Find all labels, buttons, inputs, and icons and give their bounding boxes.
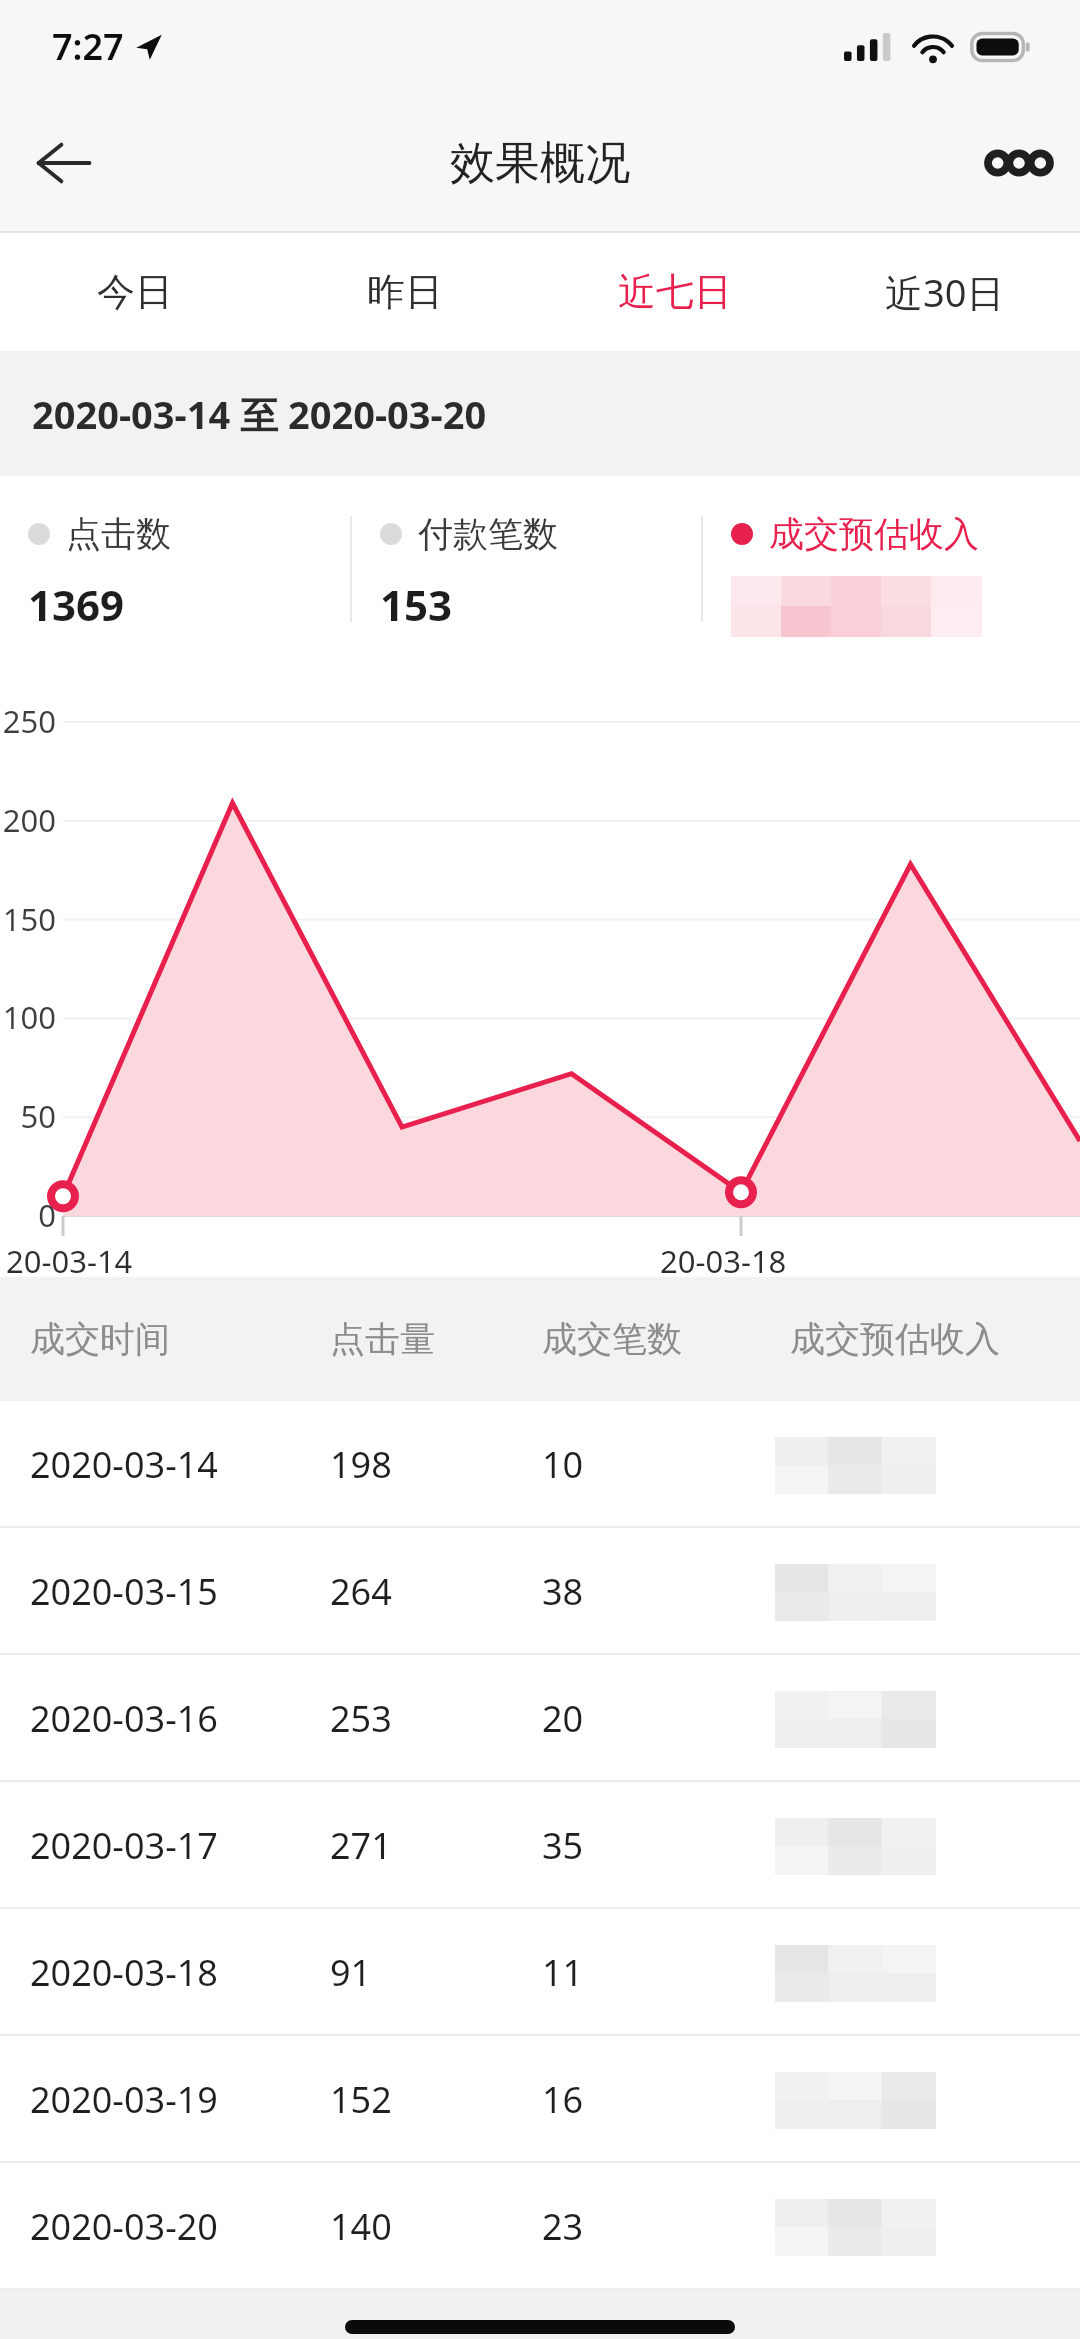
staticText: 近30日: [885, 266, 1005, 318]
staticText: 昨日: [367, 268, 443, 316]
staticText: 2020-03-20: [30, 2202, 218, 2251]
staticText: 2020-03-16: [30, 1694, 218, 1743]
staticText: 近七日: [618, 268, 732, 316]
staticText: 2020-03-18: [30, 1948, 218, 1997]
staticText: 20-03-14: [6, 1240, 133, 1282]
staticText: 140: [330, 2202, 392, 2251]
staticText: 20-03-18: [660, 1240, 787, 1282]
staticText: 2020-03-14: [30, 1440, 218, 1489]
staticText: 198: [330, 1440, 392, 1489]
staticText: 153: [380, 576, 453, 633]
button[interactable]: 近30日: [810, 233, 1080, 351]
staticText: 250: [0, 700, 56, 742]
staticText: 点击数: [66, 512, 171, 556]
staticText: 16: [542, 2075, 584, 2124]
staticText: 点击量: [330, 1317, 435, 1361]
staticText: 成交笔数: [542, 1317, 682, 1361]
staticText: 成交预估收入: [769, 512, 979, 556]
staticText: 1369: [28, 576, 125, 633]
button[interactable]: 点击数: [0, 476, 350, 662]
staticText: 271: [330, 1821, 392, 1870]
staticText: 152: [330, 2075, 392, 2124]
button[interactable]: 成交预估收入: [703, 476, 1080, 662]
staticText: 2020-03-19: [30, 2075, 218, 2124]
staticText: 50: [0, 1095, 56, 1137]
staticText: 2020-03-15: [30, 1567, 218, 1616]
button[interactable]: 2020-03-20: [0, 2163, 1080, 2290]
staticText: 效果概况: [450, 135, 630, 192]
button[interactable]: 近七日: [540, 233, 810, 351]
staticText: 2020-03-17: [30, 1821, 218, 1870]
button[interactable]: 2020-03-18: [0, 1909, 1080, 2036]
staticText: 11: [542, 1948, 584, 1997]
staticText: 253: [330, 1694, 392, 1743]
staticText: 200: [0, 799, 56, 841]
button[interactable]: 2020-03-17: [0, 1782, 1080, 1909]
staticText: 38: [542, 1567, 584, 1616]
staticText: 成交时间: [30, 1317, 170, 1361]
staticText: 150: [0, 898, 56, 940]
button[interactable]: More options: [976, 120, 1062, 206]
staticText: 10: [542, 1440, 584, 1489]
staticText: 35: [542, 1821, 584, 1870]
button[interactable]: 2020-03-14: [0, 1401, 1080, 1528]
staticText: 20: [542, 1694, 584, 1743]
staticText: 100: [0, 996, 56, 1038]
staticText: 264: [330, 1567, 392, 1616]
button[interactable]: 2020-03-15: [0, 1528, 1080, 1655]
button[interactable]: 今日: [0, 233, 270, 351]
staticText: 付款笔数: [418, 512, 558, 556]
staticText: 今日: [97, 268, 173, 316]
button[interactable]: 2020-03-19: [0, 2036, 1080, 2163]
button[interactable]: Back: [20, 120, 106, 206]
button[interactable]: 付款笔数: [352, 476, 701, 662]
staticText: 7:27: [52, 22, 124, 71]
staticText: 91: [330, 1948, 372, 1997]
staticText: 0: [0, 1194, 56, 1236]
button[interactable]: 2020-03-16: [0, 1655, 1080, 1782]
staticText: 成交预估收入: [790, 1317, 1000, 1361]
button[interactable]: 昨日: [270, 233, 540, 351]
staticText: 23: [542, 2202, 584, 2251]
staticText: 2020-03-14 至 2020-03-20: [32, 388, 487, 440]
